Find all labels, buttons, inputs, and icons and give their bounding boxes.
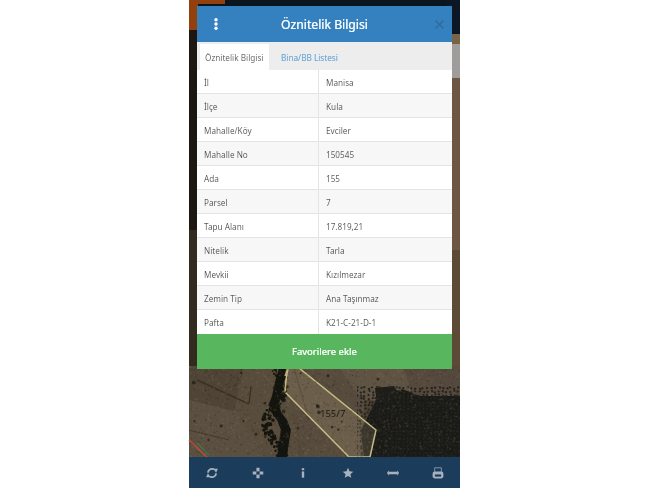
staticText: Zemin Tip — [204, 293, 242, 304]
staticText: 7 — [326, 197, 331, 208]
staticText: Tarla — [326, 245, 345, 256]
button[interactable]: Zemin Tip — [197, 286, 452, 310]
staticText: Nitelik — [204, 245, 229, 256]
staticText: Ana Taşınmaz — [326, 293, 379, 304]
staticText: İlçe — [204, 101, 218, 112]
staticText: Mevkii — [204, 269, 229, 280]
staticText: Öznitelik Bilgisi — [281, 16, 368, 33]
button[interactable]: Ada — [197, 166, 452, 190]
staticText: 155 — [326, 173, 341, 184]
staticText: Evciler — [326, 125, 351, 136]
button[interactable]: Öznitelik Bilgisi — [200, 44, 269, 70]
staticText: 150545 — [326, 149, 355, 160]
staticText: Öznitelik Bilgisi — [205, 52, 264, 63]
button[interactable]: Mahalle/Köy — [197, 118, 452, 142]
button[interactable]: İlçe — [197, 94, 452, 118]
staticText: Ada — [204, 173, 219, 184]
staticText: Manisa — [326, 77, 354, 88]
button[interactable]: Mahalle No — [197, 142, 452, 166]
staticText: Kula — [326, 101, 343, 112]
button[interactable]: Parsel — [197, 190, 452, 214]
button[interactable]: Favorilere ekle — [197, 334, 452, 369]
staticText: Mahalle No — [204, 149, 248, 160]
staticText: K21-C-21-D-1 — [326, 317, 377, 328]
staticText: 17.819,21 — [326, 221, 364, 232]
button[interactable]: Locate — [235, 457, 280, 488]
staticText: Bina/BB Listesi — [281, 52, 338, 63]
staticText: 155/7 — [320, 407, 346, 420]
button[interactable]: Info — [280, 457, 325, 488]
button[interactable]: Close — [429, 14, 449, 34]
staticText: Mahalle/Köy — [204, 125, 252, 136]
button[interactable]: Refresh — [189, 457, 235, 488]
staticText: Parsel — [204, 197, 228, 208]
button[interactable]: İl — [197, 70, 452, 94]
staticText: İl — [204, 77, 209, 88]
button[interactable]: Tapu Alanı — [197, 214, 452, 238]
button[interactable]: Nitelik — [197, 238, 452, 262]
button[interactable]: Pafta — [197, 310, 452, 334]
button[interactable]: Bina/BB Listesi — [269, 44, 349, 70]
staticText: Tapu Alanı — [204, 221, 244, 232]
staticText: Kızılmezar — [326, 269, 366, 280]
staticText: Pafta — [204, 317, 224, 328]
button[interactable]: More options — [205, 13, 227, 35]
button[interactable]: Measure — [370, 457, 415, 488]
button[interactable]: Favorite — [325, 457, 370, 488]
button[interactable]: Print — [415, 457, 460, 488]
staticText: Favorilere ekle — [292, 345, 357, 358]
button[interactable]: Mevkii — [197, 262, 452, 286]
